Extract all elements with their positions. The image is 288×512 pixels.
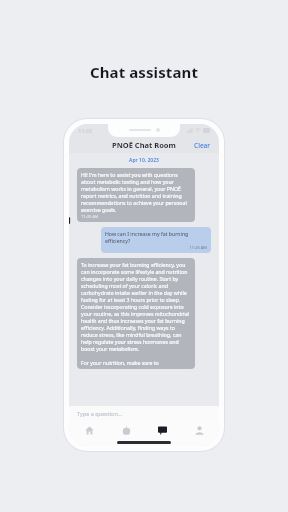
staticText: To increase your fat burning efficiency,…: [81, 261, 191, 366]
staticText: Type a question...: [77, 410, 123, 417]
other: PNOE assistant avatar: [69, 215, 71, 226]
staticText: Apr 10, 2023: [77, 157, 211, 164]
button[interactable]: Hi! I'm here to assist you with question…: [77, 168, 195, 222]
staticText: PNOĒ Chat Room: [112, 140, 176, 150]
button[interactable]: Type a question...: [69, 406, 219, 420]
button[interactable]: Chat: [145, 420, 179, 440]
button[interactable]: Nutrition: [109, 420, 143, 440]
button[interactable]: Clear: [186, 138, 219, 153]
staticText: Chat assistant: [90, 62, 198, 82]
staticText: Clear: [194, 141, 211, 150]
staticText: 11:25 AM: [81, 214, 99, 219]
button[interactable]: How can I increase my fat burning effici…: [101, 227, 211, 253]
button[interactable]: Profile: [182, 420, 216, 440]
staticText: Hi! I'm here to assist you with question…: [81, 171, 191, 213]
staticText: 11:26: [78, 127, 93, 134]
button[interactable]: To increase your fat burning efficiency,…: [77, 258, 195, 369]
button[interactable]: Home: [72, 420, 106, 440]
staticText: 11:25 AM: [105, 245, 207, 250]
staticText: How can I increase my fat burning effici…: [105, 230, 207, 244]
